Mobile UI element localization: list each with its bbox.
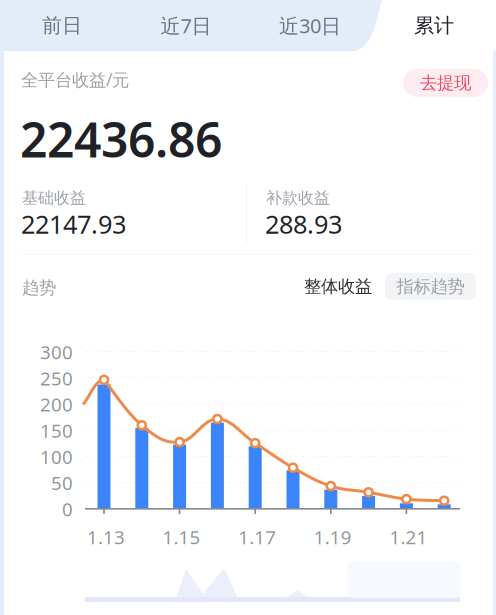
staticText: 200 (40, 392, 73, 417)
button[interactable]: 整体收益 (294, 273, 382, 300)
button[interactable]: 近30日 (248, 0, 372, 51)
button[interactable]: 前日 (0, 0, 124, 51)
button[interactable]: 指标趋势 (385, 273, 476, 300)
staticText: 近30日 (279, 12, 341, 39)
staticText: 0 (62, 497, 73, 521)
staticText: 整体收益 (304, 276, 372, 297)
staticText: 300 (40, 340, 73, 364)
staticText: 1.19 (314, 525, 352, 549)
staticText: 250 (40, 366, 73, 391)
staticText: 22147.93 (21, 207, 126, 241)
staticText: 补款收益 (266, 188, 330, 208)
staticText: 150 (40, 418, 73, 443)
staticText: 1.15 (163, 525, 201, 549)
staticText: 基础收益 (22, 188, 86, 208)
staticText: 去提现 (420, 72, 471, 94)
staticText: 1.21 (389, 525, 427, 549)
staticText: 50 (51, 470, 73, 495)
button[interactable]: 近7日 (124, 0, 248, 51)
staticText: 趋势 (22, 277, 56, 298)
staticText: 1.17 (238, 525, 276, 549)
staticText: 1.13 (87, 525, 125, 549)
staticText: 全平台收益/元 (21, 68, 129, 91)
staticText: 22436.86 (20, 107, 222, 171)
staticText: 指标趋势 (396, 276, 464, 297)
staticText: 288.93 (265, 207, 342, 241)
staticText: 100 (40, 444, 73, 469)
button[interactable]: 累计 (372, 0, 496, 51)
button[interactable]: 去提现 (403, 69, 488, 97)
staticText: 前日 (42, 13, 82, 38)
staticText: 近7日 (160, 12, 211, 39)
staticText: 累计 (414, 13, 454, 38)
